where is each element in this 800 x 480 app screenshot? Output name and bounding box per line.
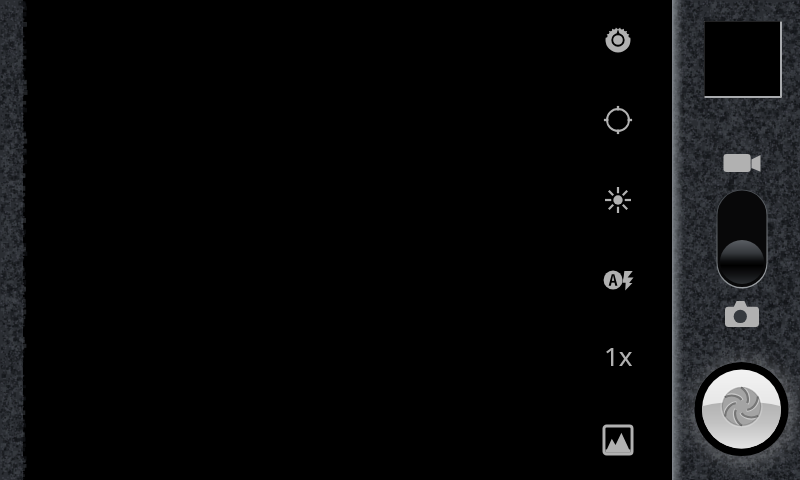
button[interactable]: Last photo xyxy=(704,21,782,98)
button[interactable]: Video mode xyxy=(714,146,770,180)
button[interactable]: Shutter xyxy=(694,362,789,457)
button[interactable]: Camera video mode switch xyxy=(716,189,768,289)
button[interactable]: 1x xyxy=(592,329,644,381)
staticText: 1x xyxy=(604,338,633,373)
button[interactable]: Scene mode xyxy=(592,414,644,466)
button[interactable]: Location tag xyxy=(592,94,644,146)
button[interactable]: Photo mode xyxy=(714,297,770,331)
button[interactable]: Flash mode xyxy=(592,254,644,306)
button[interactable]: White balance xyxy=(592,174,644,226)
button[interactable]: Settings xyxy=(592,14,644,66)
